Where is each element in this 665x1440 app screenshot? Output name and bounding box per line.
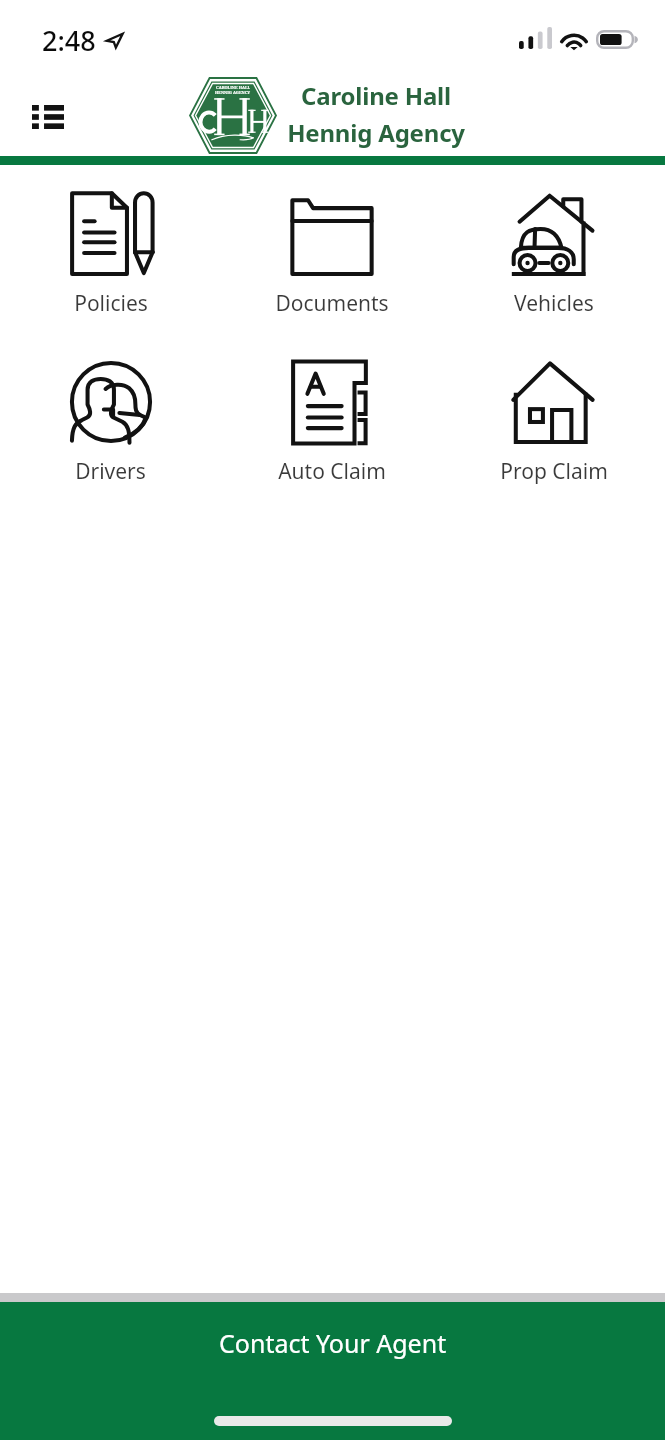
- staticText: Contact Your Agent: [219, 1326, 447, 1360]
- button[interactable]: Vehicles: [443, 192, 665, 318]
- button[interactable]: Documents: [221, 192, 443, 318]
- button[interactable]: Menu: [16, 92, 80, 142]
- staticText: Auto Claim: [278, 457, 386, 486]
- staticText: Drivers: [75, 457, 146, 486]
- button[interactable]: Auto Claim: [221, 360, 443, 486]
- button[interactable]: Policies: [0, 192, 221, 318]
- staticText: Hennig Agency: [287, 116, 465, 149]
- staticText: 2:48: [42, 22, 96, 59]
- button[interactable]: Drivers: [0, 360, 221, 486]
- staticText: Prop Claim: [500, 457, 608, 486]
- button[interactable]: Contact Your Agent: [0, 1302, 665, 1440]
- staticText: Caroline Hall: [301, 79, 451, 112]
- staticText: Documents: [275, 289, 389, 318]
- staticText: Policies: [74, 289, 148, 318]
- staticText: CAROLINE HALL: [216, 85, 251, 90]
- staticText: HENNIG AGENCY: [215, 90, 251, 95]
- button[interactable]: Prop Claim: [443, 360, 665, 486]
- staticText: Vehicles: [514, 289, 594, 318]
